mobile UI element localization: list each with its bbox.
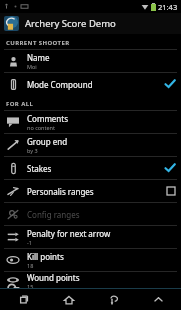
button[interactable]: Kill points (0, 249, 181, 271)
button[interactable]: Name (0, 50, 181, 72)
button[interactable]: Home (46, 289, 91, 310)
button[interactable]: Wound points (0, 272, 181, 288)
staticText: CURRENT SHOOTER (6, 39, 70, 47)
staticText: Archery Score Demo (25, 17, 116, 30)
staticText: Comments (27, 113, 69, 124)
button[interactable]: Mode Compound (0, 73, 181, 95)
button[interactable]: Penalty for next arrow (0, 226, 181, 248)
button[interactable]: Comments (0, 111, 181, 133)
staticText: 21:43 (158, 2, 178, 12)
button[interactable]: App icon (4, 16, 19, 31)
button: Config ranges (0, 203, 181, 225)
staticText: FOR ALL (6, 100, 34, 108)
staticText: Wound points (27, 272, 80, 283)
staticText: no content (27, 124, 55, 131)
staticText: Personalis ranges (27, 186, 94, 197)
button[interactable]: Personalis ranges (0, 180, 181, 202)
button[interactable]: Back (91, 289, 136, 310)
staticText: -1 (27, 239, 32, 246)
staticText: 15 (27, 283, 34, 288)
button[interactable]: Show keyboard selector (136, 289, 181, 310)
staticText: Kill points (27, 251, 64, 262)
staticText: by 3 (27, 147, 38, 154)
staticText: Config ranges (27, 209, 80, 220)
staticText: Group end (27, 136, 68, 147)
button[interactable]: Group end (0, 134, 181, 156)
staticText: Mode Compound (27, 79, 93, 90)
staticText: Name (27, 52, 50, 63)
staticText: Penalty for next arrow (27, 228, 111, 239)
button[interactable]: Recents (0, 289, 46, 310)
staticText: 18 (27, 262, 34, 269)
staticText: Stakes (27, 163, 52, 174)
staticText: Moi (27, 63, 37, 70)
button[interactable]: Stakes (0, 157, 181, 179)
